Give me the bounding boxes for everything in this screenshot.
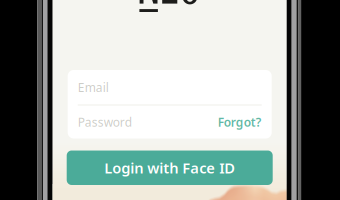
staticText: Login with Face ID: [104, 158, 235, 177]
staticText: Password: [78, 114, 132, 130]
staticText: Forgot?: [218, 114, 262, 130]
button[interactable]: Login with Face ID: [67, 150, 273, 185]
button[interactable]: Password: [68, 105, 272, 138]
button[interactable]: Email: [68, 70, 272, 104]
staticText: Email: [78, 79, 109, 95]
